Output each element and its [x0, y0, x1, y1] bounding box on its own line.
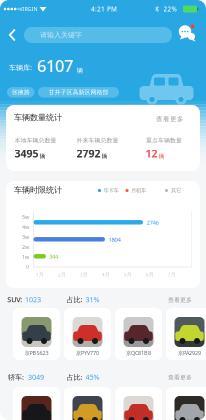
staticText: 4月: [101, 271, 109, 278]
staticText: 12: [145, 146, 157, 161]
staticText: 轿车:: [8, 372, 24, 382]
staticText: 2月: [57, 271, 65, 278]
button[interactable]: 查看更多: [168, 374, 192, 381]
staticText: 5w: [22, 213, 29, 221]
staticText: 3w: [22, 233, 29, 241]
staticText: 3495: [14, 146, 38, 161]
button[interactable]: 车辆: [115, 387, 162, 420]
staticText: 重点车辆数量: [146, 137, 182, 144]
button[interactable]: 查看更多: [156, 115, 184, 123]
staticText: 京PA2929: [178, 349, 201, 357]
staticText: 京PBS623: [24, 349, 48, 357]
staticText: 31%: [85, 295, 99, 304]
staticText: 辆: [101, 153, 107, 160]
staticText: 1w: [22, 253, 29, 261]
staticText: 6107: [37, 54, 73, 77]
staticText: 1804: [108, 235, 120, 243]
staticText: 占比:: [66, 295, 82, 304]
staticText: 4w: [22, 223, 29, 231]
button[interactable]: 车辆: [13, 387, 60, 420]
staticText: 本地车辆总数量: [14, 137, 56, 144]
staticText: 4:21 PM: [91, 5, 117, 13]
staticText: 1月: [35, 271, 43, 278]
staticText: 张掖路: [12, 88, 30, 96]
staticText: 外来车辆总数量: [76, 137, 118, 144]
button[interactable]: 京PYV770: [64, 308, 111, 360]
staticText: 22%: [163, 5, 176, 13]
staticText: 月租车: [131, 187, 146, 194]
staticText: 京PYV770: [76, 349, 99, 357]
staticText: VIRGIN: [19, 5, 37, 13]
staticText: 查看更多: [156, 115, 184, 123]
staticText: 年卡车: [103, 187, 118, 194]
staticText: 2792: [76, 146, 100, 161]
button[interactable]: Back: [5, 27, 19, 42]
button[interactable]: 车辆: [64, 387, 111, 420]
button[interactable]: 京PBS623: [13, 308, 60, 360]
staticText: 辆: [39, 153, 45, 160]
staticText: 5月: [123, 271, 131, 278]
staticText: 占比:: [66, 372, 82, 382]
staticText: 其它: [171, 187, 181, 194]
staticText: 0: [26, 263, 29, 270]
button[interactable]: Messages: [177, 24, 197, 42]
staticText: 45%: [85, 372, 99, 382]
staticText: 6月: [145, 271, 153, 278]
staticText: 辆: [76, 66, 83, 75]
staticText: 辆: [158, 153, 164, 160]
button[interactable]: 车辆: [166, 387, 206, 420]
button[interactable]: 京QC81B8: [115, 308, 162, 360]
staticText: 甘井子区高新区网格部: [48, 88, 108, 96]
staticText: 2w: [22, 243, 29, 251]
staticText: 京QC81B8: [126, 349, 151, 357]
staticText: 查看更多: [168, 296, 192, 304]
staticText: 1023: [25, 295, 41, 304]
staticText: 查看更多: [168, 374, 192, 381]
staticText: 3月: [79, 271, 87, 278]
staticText: SUV:: [7, 295, 22, 304]
staticText: 3049: [28, 372, 44, 382]
button[interactable]: 张掖路: [7, 87, 34, 97]
staticText: 7月: [167, 271, 175, 278]
button[interactable]: 查看更多: [168, 296, 192, 304]
staticText: 2746: [146, 218, 158, 226]
staticText: 344: [49, 252, 58, 260]
button[interactable]: 京PA2929: [166, 308, 206, 360]
staticText: 车辆数量统计: [14, 112, 62, 123]
button[interactable]: 请输入关键字: [24, 27, 172, 43]
button[interactable]: 甘井子区高新区网格部: [38, 87, 119, 97]
staticText: 请输入关键字: [40, 31, 82, 39]
staticText: 车辆库:: [9, 63, 32, 72]
staticText: 车辆时限统计: [14, 185, 62, 195]
